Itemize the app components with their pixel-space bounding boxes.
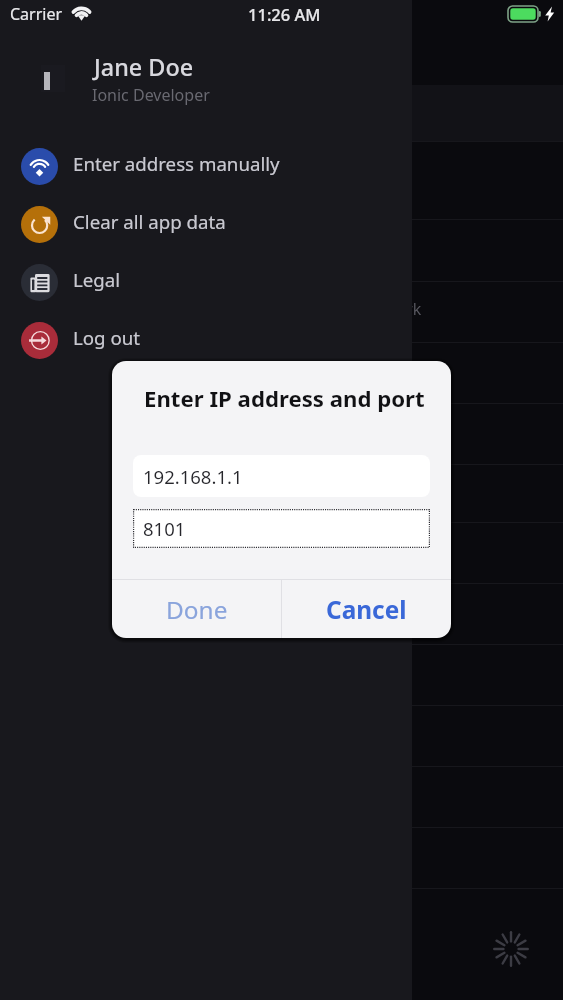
button[interactable]: Legal (0, 254, 412, 310)
button[interactable]: 8101 (133, 509, 430, 548)
staticText: Cancel (326, 593, 407, 626)
button[interactable]: Cancel (282, 580, 451, 638)
staticText: 8101 (143, 516, 186, 541)
staticText: Done (166, 593, 228, 626)
staticText: Legal (73, 267, 121, 292)
staticText: Enter address manually (73, 151, 280, 176)
staticText: Carrier (10, 3, 63, 25)
button[interactable]: Log out (0, 312, 412, 368)
staticText: Ionic Developer (92, 84, 210, 106)
staticText: Log out (73, 325, 141, 350)
button[interactable]: 192.168.1.1 (133, 455, 430, 497)
button[interactable]: Enter address manually (0, 138, 412, 194)
staticText: Jane Doe (94, 51, 194, 83)
staticText: Network (357, 298, 422, 320)
staticText: Clear all app data (73, 209, 226, 234)
button[interactable]: Done (112, 580, 281, 638)
button[interactable]: Clear all app data (0, 196, 412, 252)
staticText: 11:26 AM (248, 3, 321, 25)
staticText: Enter IP address and port (144, 383, 425, 413)
staticText: 192.168.1.1 (143, 464, 243, 489)
